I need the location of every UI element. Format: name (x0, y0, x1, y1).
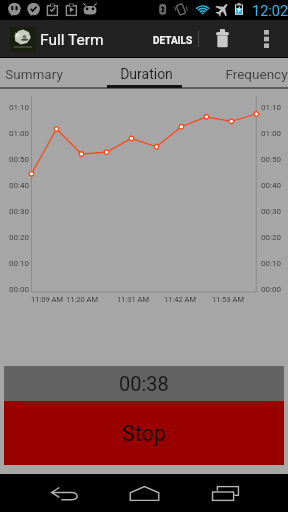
button[interactable]: Back (36, 474, 94, 512)
staticText: 11:42 AM (155, 295, 205, 304)
staticText: 00:40 (9, 181, 29, 190)
staticText: 11:31 AM (108, 295, 158, 304)
staticText: 01:00 (261, 129, 281, 138)
button[interactable]: Stop (4, 401, 284, 465)
button[interactable]: 00:38 (4, 366, 284, 401)
staticText: 00:00 (261, 285, 281, 294)
button[interactable]: Duration (98, 58, 194, 87)
staticText: 11:53 AM (203, 295, 253, 304)
staticText: 12:02 (252, 3, 288, 20)
staticText: 01:00 (9, 129, 29, 138)
staticText: DETAILS (153, 35, 193, 47)
staticText: Frequency (225, 66, 288, 82)
staticText: Stop (122, 421, 166, 446)
staticText: 11:20 AM (57, 295, 107, 304)
staticText: 11:09 AM (22, 295, 72, 304)
staticText: 00:40 (261, 181, 281, 190)
button[interactable]: Frequency (208, 58, 288, 87)
staticText: 00:50 (9, 155, 29, 164)
staticText: 00:10 (9, 259, 29, 268)
staticText: 00:20 (261, 233, 281, 242)
button[interactable]: Delete (202, 20, 242, 57)
button[interactable]: Recent apps (196, 474, 254, 512)
staticText: 01:10 (261, 103, 281, 112)
staticText: 00:00 (9, 285, 29, 294)
staticText: 00:30 (9, 207, 29, 216)
staticText: 00:50 (261, 155, 281, 164)
staticText: 01:10 (9, 103, 29, 112)
staticText: 00:30 (261, 207, 281, 216)
button[interactable]: More options (252, 20, 280, 57)
button[interactable]: Summary (0, 58, 82, 87)
staticText: 00:20 (9, 233, 29, 242)
button[interactable]: DETAILS (146, 22, 200, 59)
staticText: 00:38 (119, 372, 169, 395)
staticText: Summary (5, 66, 63, 82)
staticText: 00:10 (261, 259, 281, 268)
staticText: Full Term (40, 31, 104, 49)
button[interactable]: Home (115, 474, 173, 512)
staticText: Duration (120, 66, 173, 82)
